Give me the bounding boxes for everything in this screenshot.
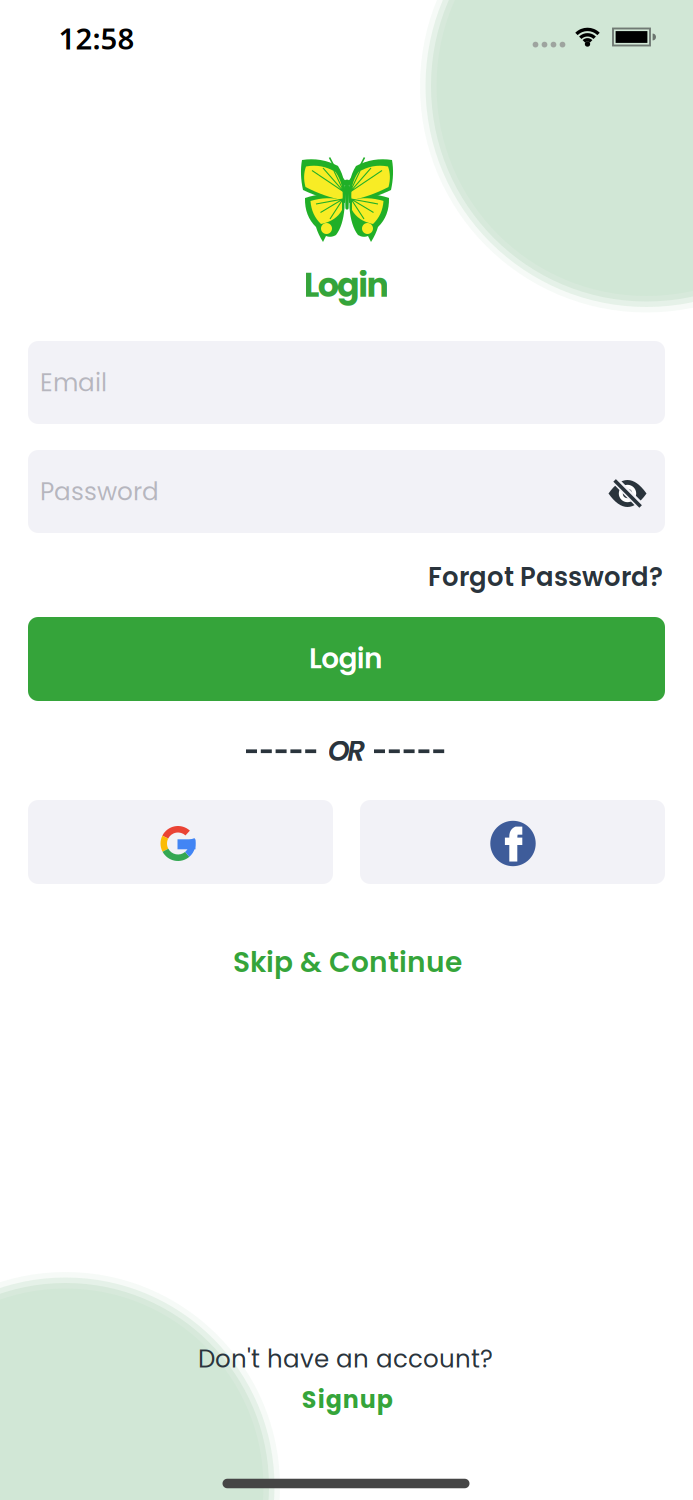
- staticText: Forgot Password?: [428, 559, 663, 595]
- staticText: Login: [309, 639, 383, 678]
- staticText: 12:58: [58, 18, 134, 57]
- staticText: Login: [304, 262, 388, 308]
- staticText: S i g n u p: [302, 1383, 393, 1416]
- staticText: Password: [40, 474, 159, 509]
- staticText: Skip & Continue: [233, 943, 462, 982]
- staticText: Don't have an account?: [198, 1342, 493, 1376]
- staticText: OR: [328, 731, 365, 771]
- staticText: Email: [40, 365, 107, 400]
